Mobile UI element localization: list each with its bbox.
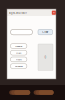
button[interactable]: Taskbar item 2 [34, 90, 54, 95]
staticText: 0 [44, 55, 46, 59]
button[interactable]: Hours [10, 57, 27, 62]
button[interactable]: Months [10, 44, 27, 48]
button[interactable]: Taskbar item 1 [9, 90, 30, 95]
staticText: AgeCalculator [9, 11, 27, 14]
staticText: Months [15, 44, 22, 48]
staticText: Days [16, 51, 21, 54]
button[interactable]: Close window [52, 11, 56, 15]
staticText: Hours [16, 58, 22, 61]
staticText: Minutes [15, 64, 23, 68]
button[interactable]: Minutes [10, 64, 27, 68]
button[interactable]: Clear [38, 29, 52, 35]
staticText: Clear [42, 30, 48, 34]
button[interactable]: Days [10, 50, 27, 55]
